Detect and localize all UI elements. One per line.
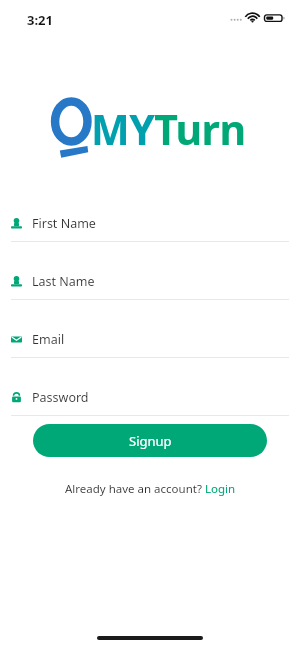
button[interactable]: Password: [0, 379, 300, 437]
staticText: First Name: [32, 215, 96, 232]
staticText: MYTurn: [91, 101, 246, 157]
button[interactable]: Signup: [33, 424, 267, 457]
staticText: Already have an account?: [65, 481, 205, 497]
button[interactable]: First Name: [0, 205, 300, 263]
button[interactable]: Login: [205, 481, 236, 497]
staticText: Email: [32, 331, 65, 348]
staticText: Login: [205, 481, 236, 497]
staticText: Signup: [129, 432, 172, 450]
staticText: 3:21: [27, 11, 53, 29]
staticText: Last Name: [32, 273, 95, 290]
staticText: Password: [32, 389, 89, 406]
button[interactable]: Email: [0, 321, 300, 379]
button[interactable]: Last Name: [0, 263, 300, 321]
